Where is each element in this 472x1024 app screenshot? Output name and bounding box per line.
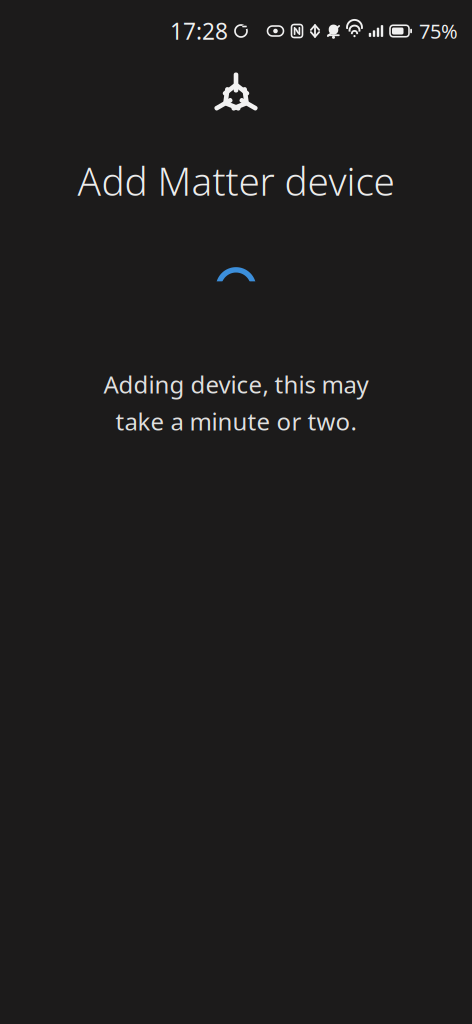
staticText: 17:28	[170, 16, 228, 46]
staticText: 75%	[419, 18, 458, 44]
staticText: Add Matter device	[77, 155, 394, 206]
staticText: Adding device, this may	[103, 368, 368, 400]
staticText: take a minute or two.	[115, 405, 356, 437]
